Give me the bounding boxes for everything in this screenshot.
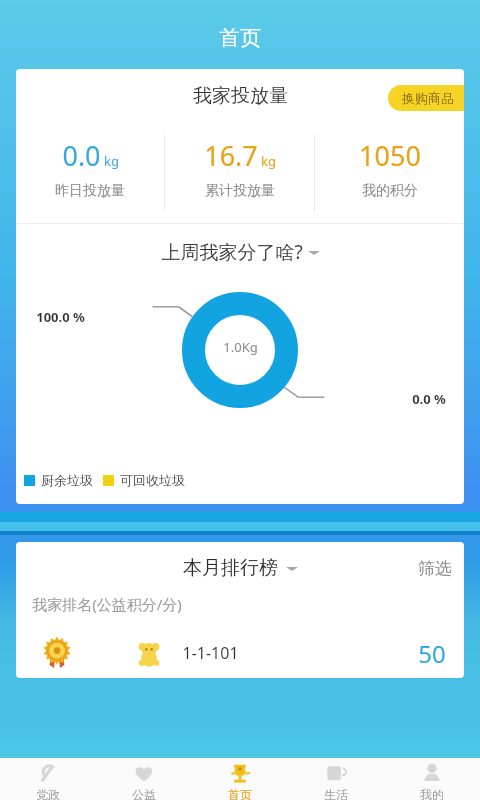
staticText: 1050 bbox=[359, 137, 421, 174]
button[interactable]: 换购商品 bbox=[388, 85, 464, 111]
staticText: kg bbox=[104, 152, 119, 170]
staticText: 1.0Kg bbox=[223, 338, 258, 356]
button[interactable]: 1-1-101 bbox=[16, 628, 464, 678]
staticText: 厨余垃圾 bbox=[41, 472, 93, 488]
staticText: 我家排名(公益积分/分) bbox=[32, 594, 182, 614]
staticText: 本月排行榜 bbox=[183, 556, 278, 580]
staticText: 可回收垃圾 bbox=[120, 472, 185, 488]
staticText: 公益 bbox=[132, 787, 156, 800]
staticText: 累计投放量 bbox=[205, 182, 275, 200]
staticText: 筛选 bbox=[418, 558, 452, 579]
staticText: 100.0 % bbox=[36, 308, 85, 326]
staticText: 我家投放量 bbox=[193, 84, 288, 108]
staticText: 党政 bbox=[36, 787, 60, 800]
button[interactable]: 首页 bbox=[192, 758, 288, 800]
button[interactable]: 生活 bbox=[288, 758, 384, 800]
staticText: 首页 bbox=[219, 25, 261, 51]
staticText: 0.0 % bbox=[412, 390, 446, 408]
button[interactable]: 筛选 bbox=[406, 552, 464, 585]
button[interactable]: 我的 bbox=[384, 758, 480, 800]
staticText: 1-1-101 bbox=[182, 642, 239, 664]
staticText: kg bbox=[261, 152, 276, 170]
button[interactable]: 上周我家分了啥? bbox=[161, 239, 320, 265]
staticText: 换购商品 bbox=[402, 90, 454, 106]
button[interactable]: 党政 bbox=[0, 758, 96, 800]
staticText: 上周我家分了啥? bbox=[161, 239, 303, 265]
staticText: 16.7 bbox=[204, 137, 258, 174]
staticText: 我的 bbox=[420, 787, 444, 800]
staticText: 生活 bbox=[324, 787, 348, 800]
staticText: 首页 bbox=[228, 787, 252, 800]
button[interactable]: 公益 bbox=[96, 758, 192, 800]
staticText: 50 bbox=[418, 637, 446, 670]
staticText: 昨日投放量 bbox=[55, 182, 125, 200]
button[interactable]: 本月排行榜 bbox=[183, 556, 298, 580]
staticText: 0.0 bbox=[62, 137, 101, 174]
staticText: 我的积分 bbox=[362, 182, 418, 200]
